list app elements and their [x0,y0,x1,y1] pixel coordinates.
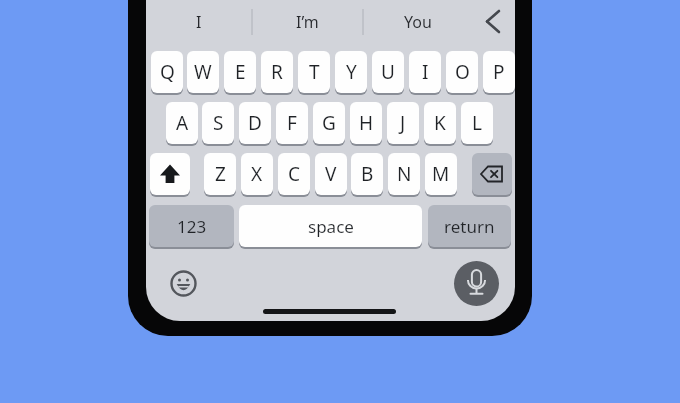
staticText: F [287,110,297,136]
button[interactable]: return [428,205,511,247]
button[interactable]: X [241,153,273,195]
button[interactable]: K [424,102,456,144]
button[interactable]: space [239,205,422,247]
staticText: H [359,110,374,136]
button[interactable]: A [166,102,198,144]
staticText: space [308,215,354,238]
button[interactable]: T [298,51,330,93]
staticText: X [251,161,263,187]
staticText: K [434,110,446,136]
staticText: P [493,59,505,85]
staticText: B [361,161,374,187]
staticText: A [176,110,189,136]
button[interactable]: C [278,153,310,195]
button[interactable]: J [387,102,419,144]
button[interactable]: G [313,102,345,144]
staticText: C [288,161,301,187]
button[interactable]: F [276,102,308,144]
staticText: O [455,59,470,85]
button[interactable]: D [239,102,271,144]
staticText: W [194,59,212,85]
staticText: R [271,59,283,85]
staticText: M [432,161,450,187]
staticText: V [325,161,337,187]
button[interactable]: You [363,5,473,39]
staticText: Z [215,161,226,187]
staticText: You [404,11,432,33]
button[interactable] [167,267,200,300]
button[interactable]: I [409,51,441,93]
button[interactable]: Y [335,51,367,93]
staticText: I’m [296,11,319,33]
button[interactable]: O [446,51,478,93]
button[interactable]: R [261,51,293,93]
staticText: Y [346,59,357,85]
button[interactable] [476,4,515,40]
staticText: I [422,59,429,85]
staticText: return [444,215,495,238]
button[interactable]: Q [151,51,183,93]
staticText: G [322,110,336,136]
staticText: N [397,161,412,187]
button[interactable]: 123 [149,205,234,247]
button[interactable]: M [425,153,457,195]
button[interactable]: L [461,102,493,144]
button[interactable]: H [350,102,382,144]
button[interactable]: S [202,102,234,144]
staticText: I [196,11,202,33]
staticText: Q [160,59,175,85]
button[interactable] [454,261,499,306]
button[interactable]: I’m [252,5,363,39]
button[interactable]: B [351,153,383,195]
button[interactable]: E [224,51,256,93]
staticText: L [472,110,482,136]
button[interactable]: I [146,5,252,39]
button[interactable] [472,153,512,195]
button[interactable]: N [388,153,420,195]
button[interactable] [150,153,190,195]
button[interactable]: P [483,51,515,93]
button[interactable]: U [372,51,404,93]
staticText: S [213,110,224,136]
staticText: J [400,110,406,136]
button[interactable]: W [187,51,219,93]
staticText: E [235,59,246,85]
button[interactable]: Z [204,153,236,195]
staticText: T [309,59,320,85]
staticText: D [248,110,262,136]
staticText: 123 [177,215,207,238]
button[interactable]: V [315,153,347,195]
staticText: U [381,59,395,85]
